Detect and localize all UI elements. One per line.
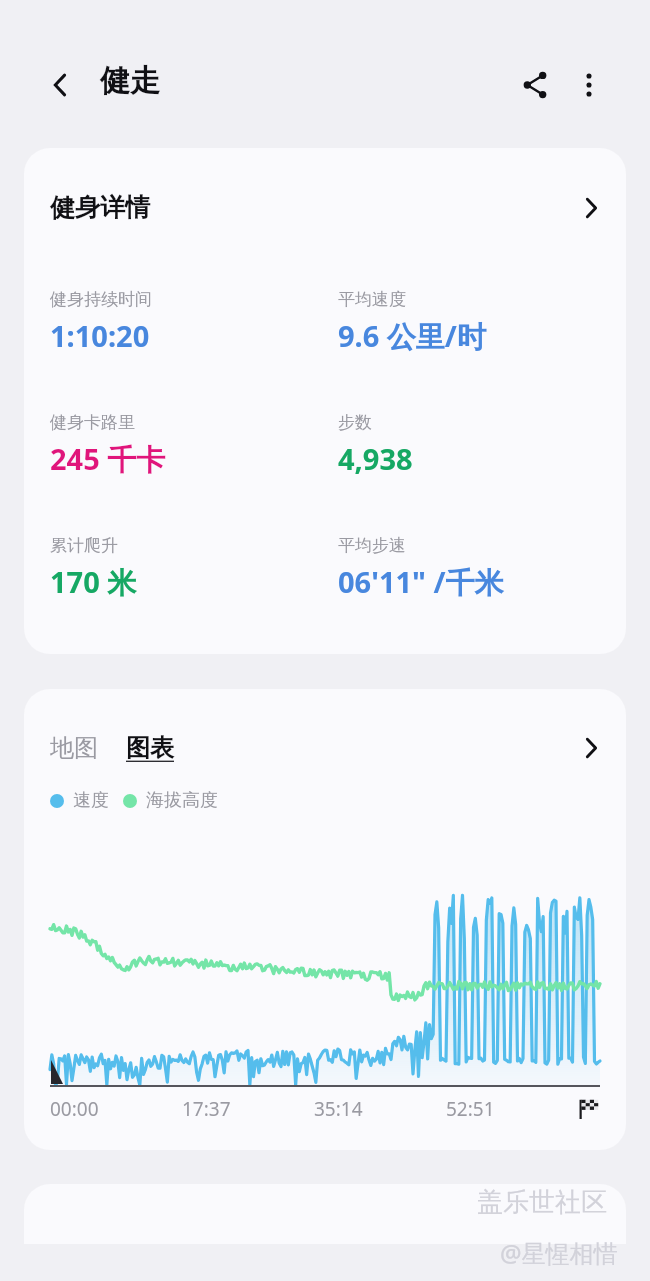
button[interactable]: 图表 (126, 733, 174, 763)
staticText: 累计爬升 (50, 535, 118, 556)
staticText: 9.6 公里/时 (338, 316, 486, 356)
staticText: 1:10:20 (50, 316, 150, 355)
staticText: @星惺相惜 (500, 1236, 618, 1269)
staticText: 平均步速 (338, 535, 406, 556)
staticText: 盖乐世社区 (477, 1186, 607, 1219)
staticText: 170 米 (50, 562, 137, 602)
staticText: 地图 (50, 733, 98, 763)
staticText: 4,938 (338, 439, 413, 478)
staticText: 健身卡路里 (50, 412, 135, 433)
staticText: 健身持续时间 (50, 289, 152, 310)
button[interactable] (24, 1184, 626, 1244)
staticText: 健走 (100, 62, 160, 100)
staticText: 17:37 (182, 1096, 231, 1122)
button[interactable]: 地图 (24, 689, 626, 763)
button[interactable]: Share (508, 58, 562, 112)
button[interactable]: Back (34, 58, 88, 112)
staticText: 速度 (73, 789, 109, 812)
button[interactable]: More options (562, 58, 616, 112)
staticText: 245 千卡 (50, 439, 166, 479)
button[interactable]: 健身详情 (24, 148, 626, 233)
staticText: 52:51 (446, 1096, 495, 1122)
staticText: 06'11" /千米 (338, 562, 504, 602)
staticText: 00:00 (50, 1096, 99, 1122)
staticText: 健身详情 (50, 192, 150, 223)
staticText: 图表 (126, 733, 174, 763)
button[interactable]: 地图 (50, 733, 102, 763)
staticText: 海拔高度 (146, 789, 218, 812)
staticText: 平均速度 (338, 289, 406, 310)
staticText: 步数 (338, 412, 372, 433)
staticText: 35:14 (314, 1096, 363, 1122)
